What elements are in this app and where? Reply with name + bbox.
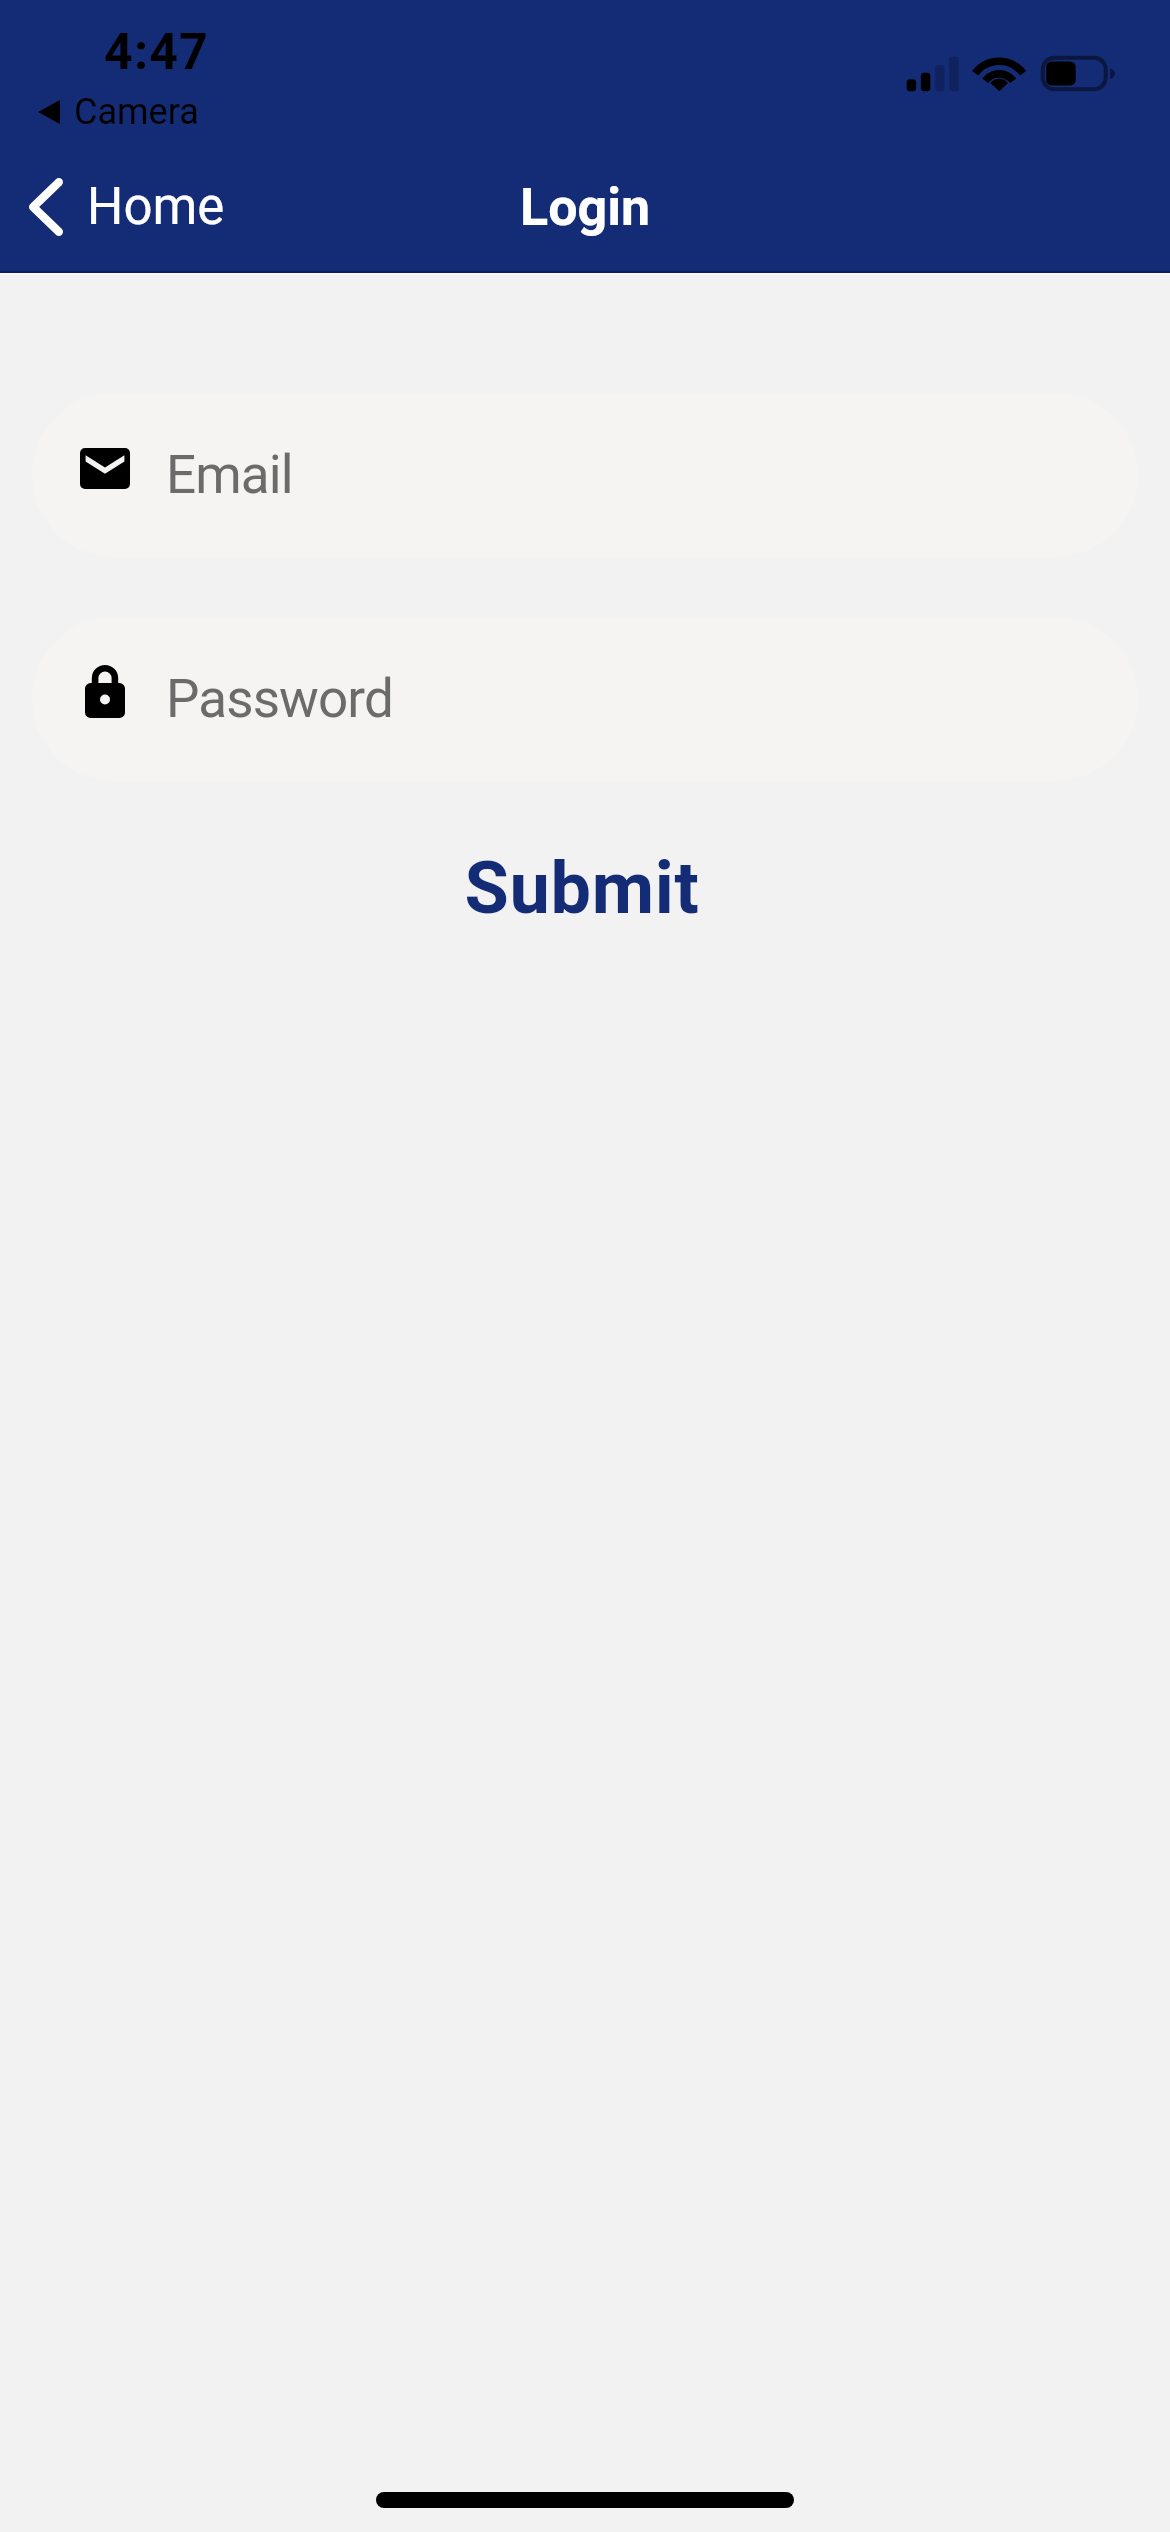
staticText: Home [87,177,225,237]
staticText: Email [166,444,293,506]
staticText: Login [520,177,651,238]
staticText: Camera [74,91,199,133]
staticText: 4:47 [104,23,209,82]
staticText: Submit [464,846,700,930]
button[interactable]: Email [32,393,1138,557]
button[interactable]: Password [32,617,1138,781]
staticText: Password [166,668,393,730]
button[interactable]: Submit [0,820,1170,956]
button[interactable]: Back to Home [18,160,241,254]
